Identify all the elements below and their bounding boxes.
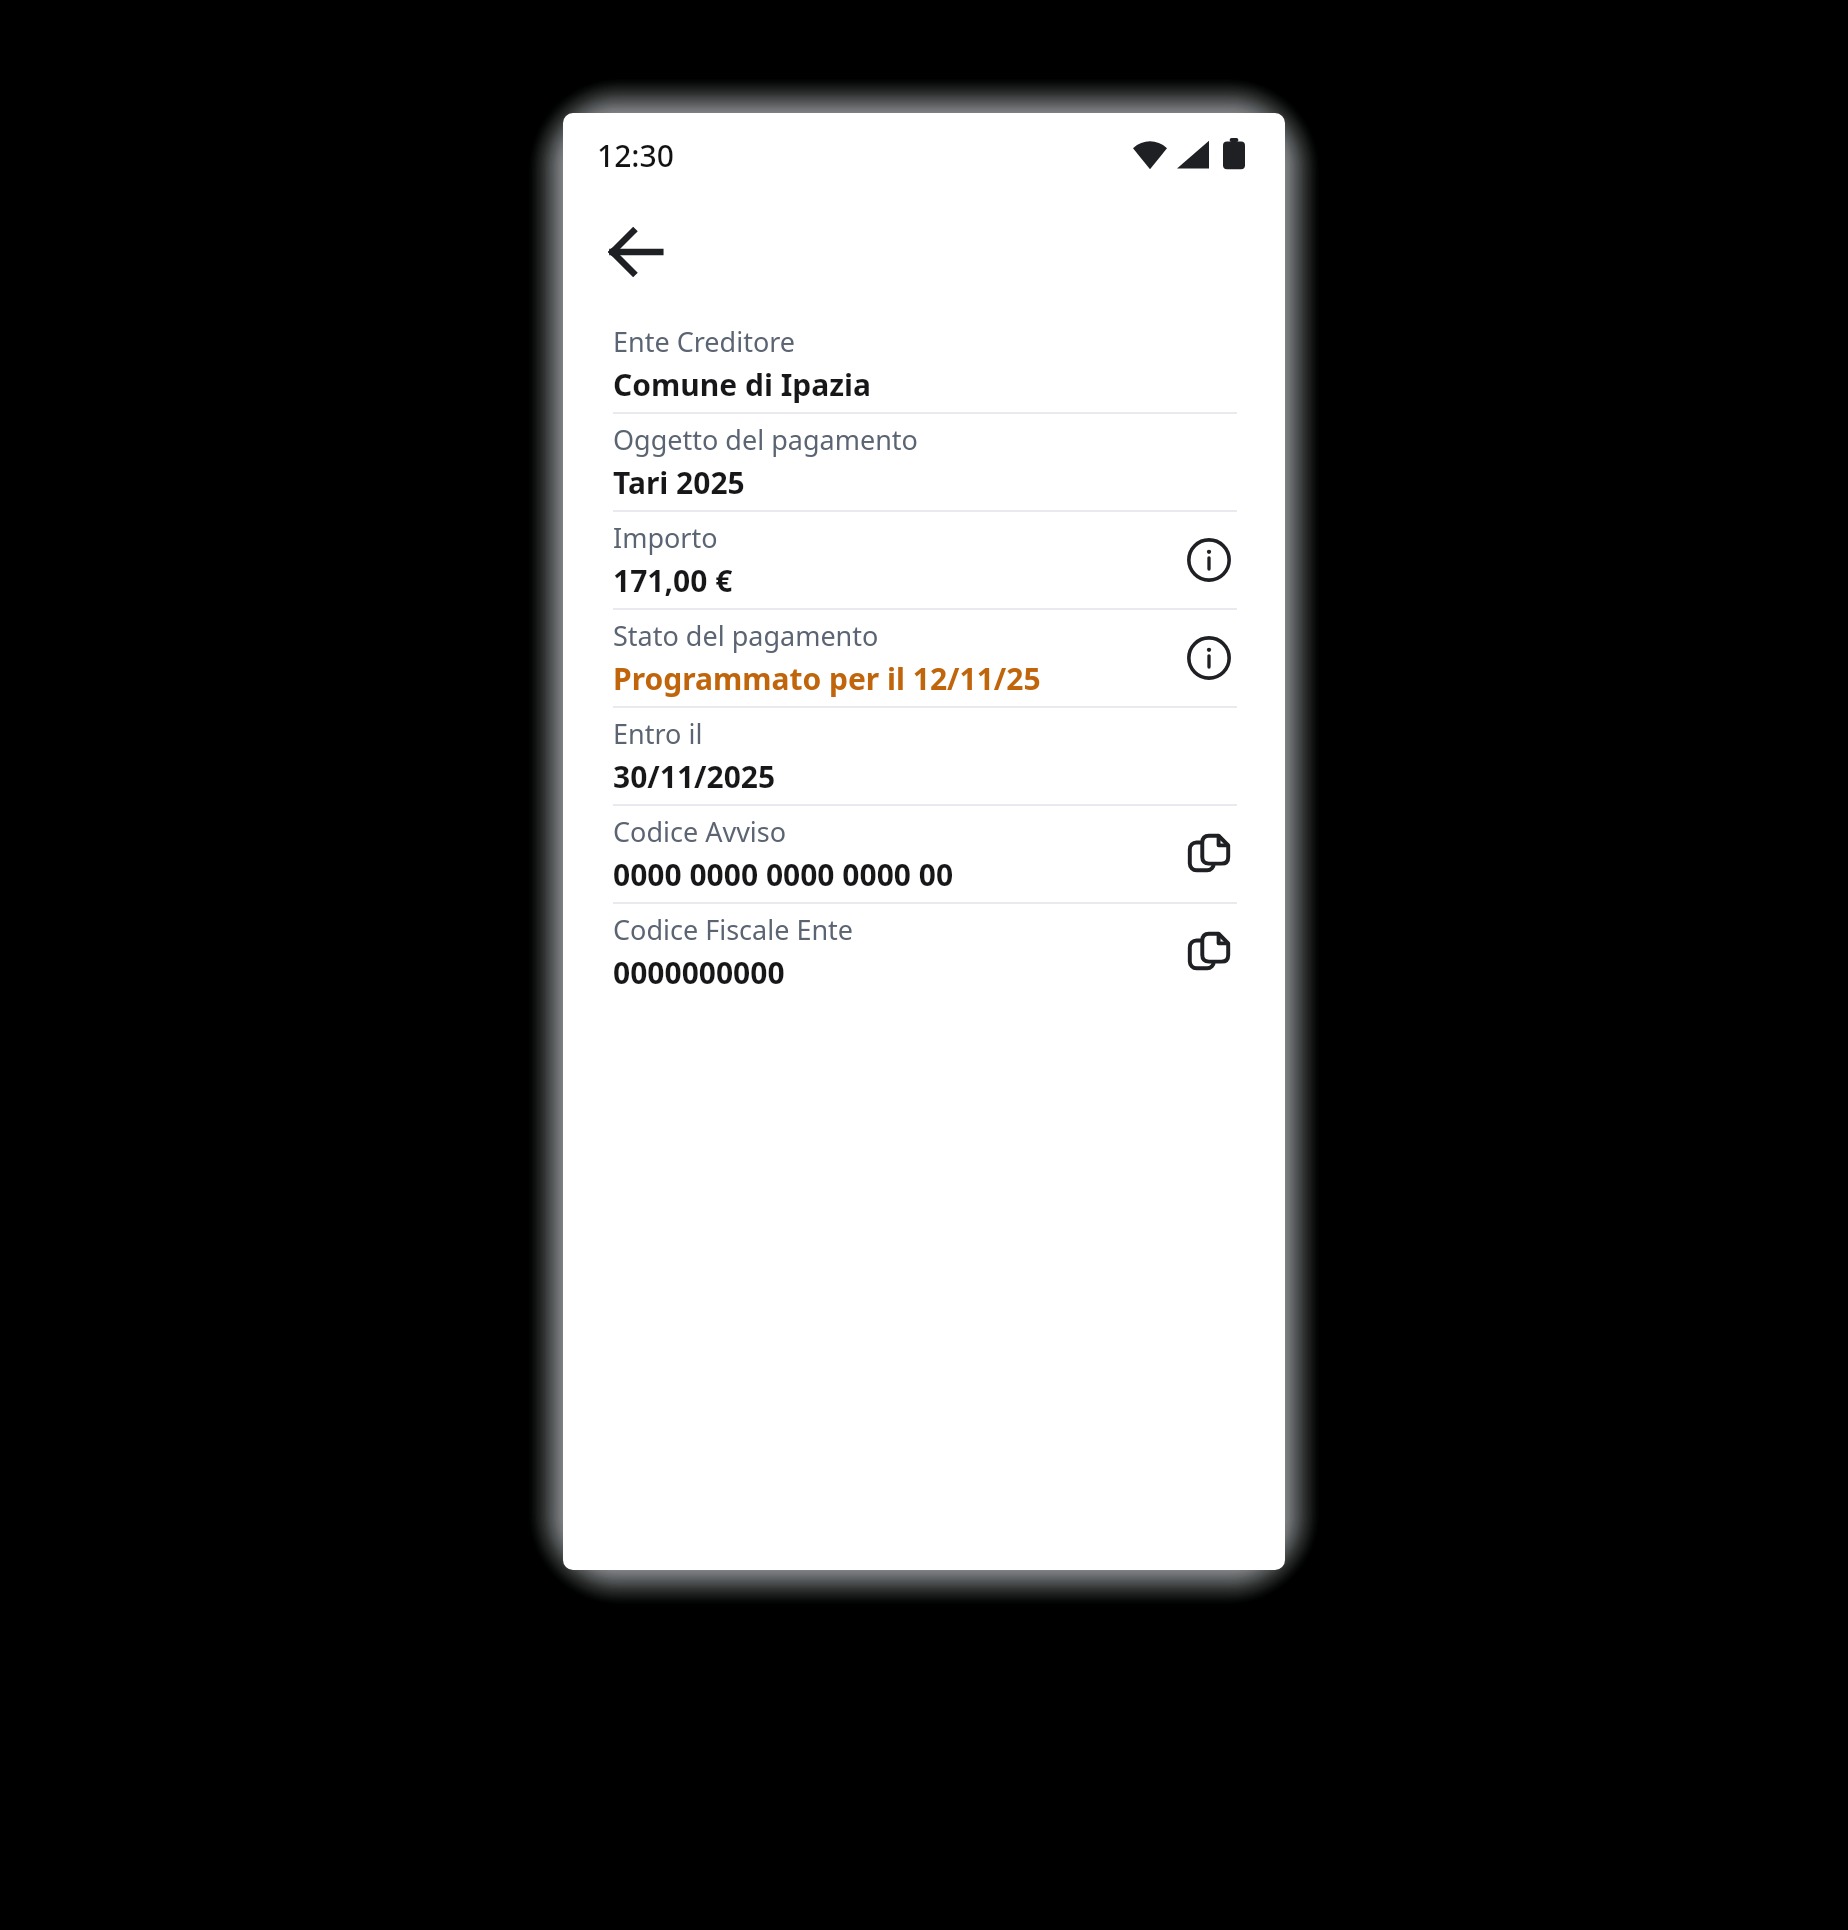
staticText: 12:30: [597, 135, 674, 176]
staticText: Ente Creditore: [613, 323, 796, 360]
staticText: 171,00 €: [613, 560, 733, 601]
staticText: Comune di Ipazia: [613, 364, 872, 405]
staticText: Entro il: [613, 715, 703, 752]
button[interactable]: Codice Fiscale Ente: [613, 904, 1237, 1000]
staticText: Codice Fiscale Ente: [613, 911, 854, 948]
staticText: Programmato per il 12/11/25: [613, 658, 1041, 699]
staticText: Oggetto del pagamento: [613, 421, 918, 458]
button[interactable]: Stato del pagamento: [613, 610, 1237, 706]
button[interactable]: Informazioni: [1181, 532, 1237, 588]
button[interactable]: Codice Avviso: [613, 806, 1237, 902]
staticText: 0000000000: [613, 952, 785, 993]
staticText: 0000 0000 0000 0000 00: [613, 854, 954, 895]
staticText: Tari 2025: [613, 462, 745, 503]
staticText: 30/11/2025: [613, 756, 776, 797]
staticText: Stato del pagamento: [613, 617, 879, 654]
button[interactable]: Copia: [1181, 826, 1237, 882]
button[interactable]: Back: [589, 206, 681, 298]
button[interactable]: Informazioni: [1181, 630, 1237, 686]
staticText: Codice Avviso: [613, 813, 787, 850]
button[interactable]: Copia: [1181, 924, 1237, 980]
button[interactable]: Importo: [613, 512, 1237, 608]
staticText: Importo: [613, 519, 718, 556]
